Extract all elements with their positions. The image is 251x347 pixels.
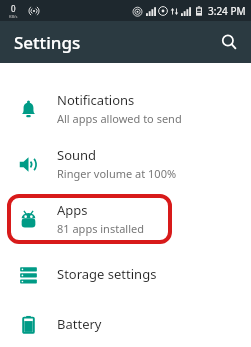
- button[interactable]: Sound: [0, 136, 251, 191]
- staticText: All apps allowed to send: [57, 111, 182, 126]
- staticText: 0: [11, 3, 16, 14]
- staticText: Storage settings: [57, 265, 157, 283]
- staticText: Ringer volume at 100%: [57, 166, 177, 181]
- button[interactable]: Notifications: [0, 81, 251, 136]
- staticText: 81 apps installed: [57, 221, 144, 236]
- button[interactable]: Search: [214, 27, 244, 57]
- staticText: Apps: [57, 201, 88, 219]
- button[interactable]: Battery: [0, 301, 251, 347]
- staticText: Settings: [14, 31, 81, 54]
- staticText: KB/s: [9, 14, 18, 19]
- staticText: 3:24 PM: [208, 4, 246, 18]
- staticText: Battery: [57, 315, 102, 333]
- button[interactable]: Storage settings: [0, 246, 251, 301]
- staticText: Sound: [57, 146, 97, 164]
- button[interactable]: Apps: [0, 191, 251, 246]
- staticText: Notifications: [57, 91, 135, 109]
